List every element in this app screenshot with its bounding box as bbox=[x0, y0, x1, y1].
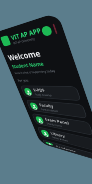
staticText: Contact details bbox=[27, 116, 52, 121]
staticText: V-PDF bbox=[27, 85, 44, 93]
button[interactable]: Library bbox=[7, 151, 85, 170]
staticText: For you bbox=[7, 71, 25, 78]
staticText: Exam Panel bbox=[27, 131, 61, 139]
staticText: VIT-AP University bbox=[25, 18, 57, 23]
staticText: Study material bbox=[27, 93, 51, 98]
staticText: Welcome bbox=[7, 31, 58, 46]
staticText: Faculty bbox=[27, 108, 48, 116]
staticText: Here is what is happening today bbox=[7, 60, 68, 65]
staticText: Seat & marks bbox=[27, 139, 49, 144]
staticText: VIT AP APP bbox=[25, 7, 69, 18]
staticText: Student Name bbox=[7, 48, 57, 58]
button[interactable]: V-PDF bbox=[7, 82, 85, 101]
button[interactable]: Faculty bbox=[7, 105, 85, 124]
button[interactable]: Exam Panel bbox=[7, 128, 85, 147]
